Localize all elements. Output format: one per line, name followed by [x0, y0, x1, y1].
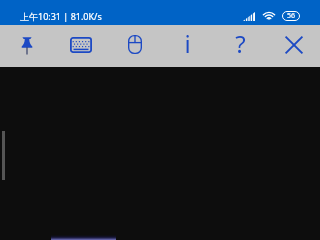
- button[interactable]: Help: [214, 25, 267, 67]
- staticText: ?: [235, 27, 246, 60]
- button[interactable]: Close: [267, 25, 320, 67]
- staticText: 上午10:31 | 81.0K/s: [20, 10, 102, 22]
- button[interactable]: Pin: [0, 25, 54, 67]
- button[interactable]: Info: [161, 25, 214, 67]
- staticText: i: [184, 27, 191, 60]
- button[interactable]: Keyboard: [54, 25, 108, 67]
- button[interactable]: Mouse: [108, 25, 161, 67]
- staticText: 56: [287, 11, 296, 21]
